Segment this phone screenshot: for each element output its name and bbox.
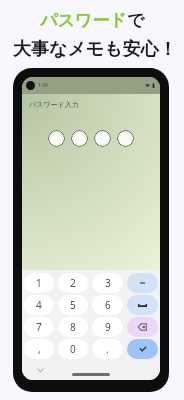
staticText: 4 (36, 298, 42, 312)
staticText: で (127, 10, 145, 31)
button[interactable]: . (92, 339, 123, 359)
staticText: 6 (105, 298, 111, 312)
staticText: , (38, 342, 41, 356)
button[interactable]: Enter (127, 339, 158, 359)
staticText: 3 (105, 276, 111, 290)
button[interactable] (48, 130, 65, 147)
staticText: 5 (70, 298, 76, 312)
staticText: パスワード (40, 10, 127, 31)
staticText: パスワード入力 (29, 100, 79, 109)
button[interactable]: Space (127, 295, 158, 315)
button[interactable]: 2 (58, 273, 88, 293)
staticText: 9 (105, 320, 111, 334)
staticText: 8 (70, 320, 76, 334)
button[interactable] (71, 130, 88, 147)
button[interactable]: 1 (24, 273, 54, 293)
button[interactable]: Minus (127, 273, 158, 293)
staticText: 2 (70, 276, 76, 290)
button[interactable]: 4 (24, 295, 54, 315)
button[interactable]: 9 (92, 317, 123, 337)
staticText: 大事なメモも安心！ (13, 38, 177, 61)
staticText: . (106, 342, 109, 356)
staticText: 1 (36, 276, 42, 290)
button[interactable]: 6 (92, 295, 123, 315)
button[interactable]: 5 (58, 295, 88, 315)
button[interactable] (117, 130, 134, 147)
staticText: 7 (36, 320, 42, 334)
button[interactable]: Hide keyboard (38, 369, 43, 372)
button[interactable]: Backspace (127, 317, 158, 337)
button[interactable]: , (24, 339, 54, 359)
button[interactable]: 8 (58, 317, 88, 337)
button[interactable]: 0 (58, 339, 88, 359)
staticText: 1:34 (38, 82, 48, 89)
button[interactable]: 3 (92, 273, 123, 293)
button[interactable]: 7 (24, 317, 54, 337)
button[interactable] (94, 130, 111, 147)
staticText: 0 (70, 342, 76, 356)
